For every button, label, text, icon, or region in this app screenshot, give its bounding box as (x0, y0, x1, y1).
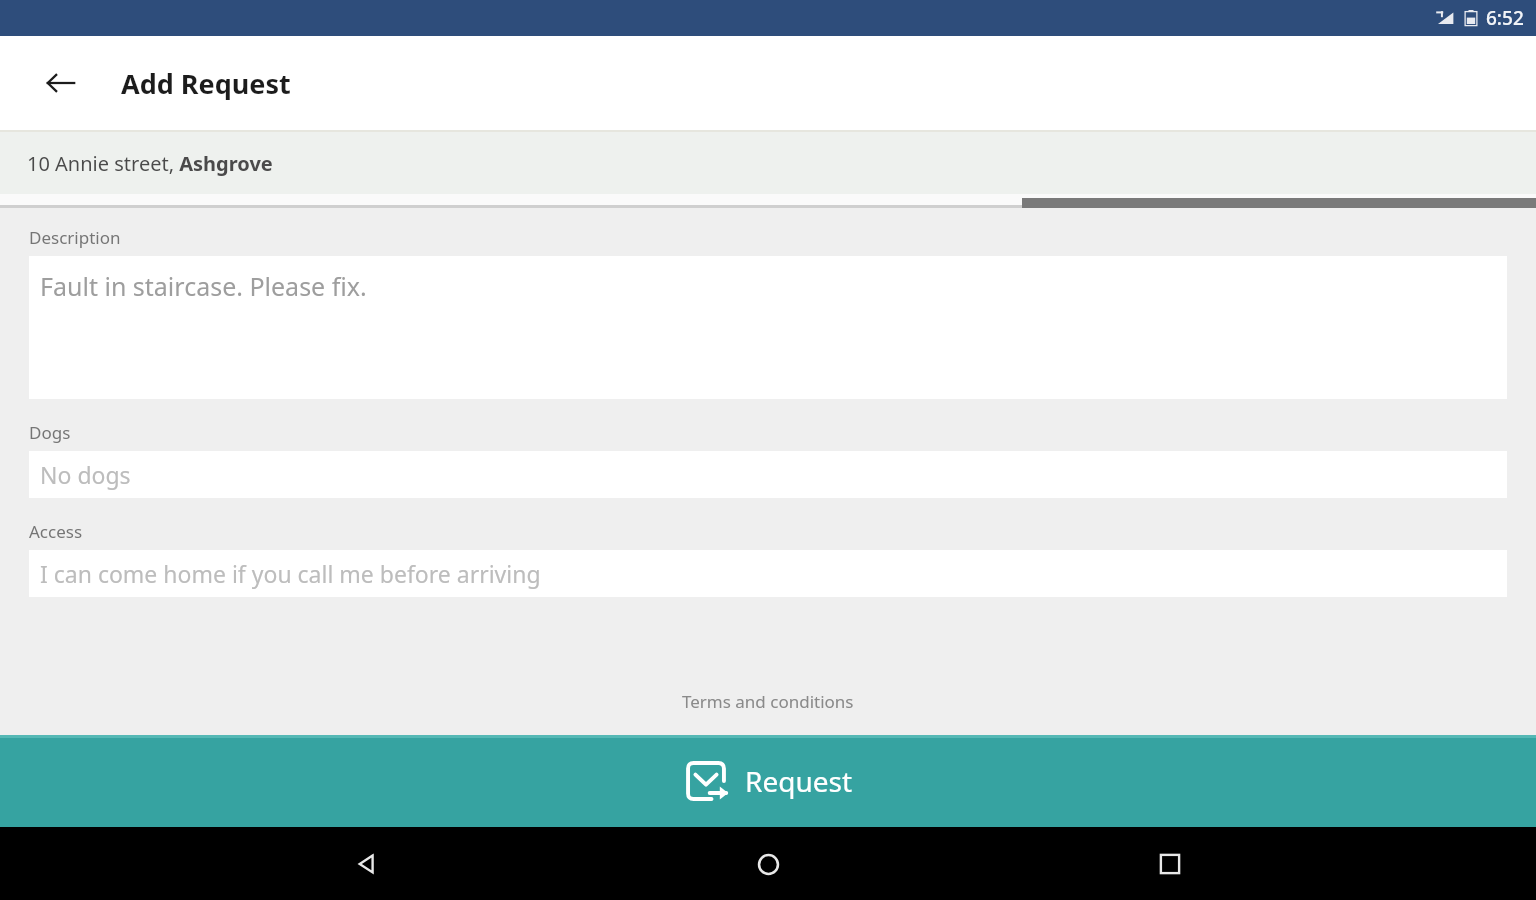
button[interactable]: Terms and conditions (0, 690, 1536, 713)
button[interactable]: Back (33, 55, 89, 111)
staticText: Access (29, 520, 83, 543)
button[interactable]: Request (0, 735, 1536, 827)
staticText: Terms and conditions (682, 690, 854, 713)
staticText: 6:52 (1486, 5, 1524, 31)
button[interactable]: Fault in staircase. Please fix. (29, 256, 1507, 399)
staticText: 10 Annie street, Ashgrove (27, 150, 273, 177)
staticText: Description (29, 226, 121, 249)
button[interactable]: I can come home if you call me before ar… (29, 550, 1507, 597)
staticText: Fault in staircase. Please fix. (40, 269, 367, 303)
button[interactable]: Home (733, 829, 803, 899)
staticText: Dogs (29, 421, 71, 444)
staticText: I can come home if you call me before ar… (40, 558, 541, 589)
staticText: Add Request (121, 65, 291, 102)
staticText: No dogs (40, 459, 131, 490)
button[interactable]: Back (332, 829, 402, 899)
staticText: Request (745, 762, 853, 800)
button[interactable]: No dogs (29, 451, 1507, 498)
button[interactable]: Recent apps (1135, 829, 1205, 899)
